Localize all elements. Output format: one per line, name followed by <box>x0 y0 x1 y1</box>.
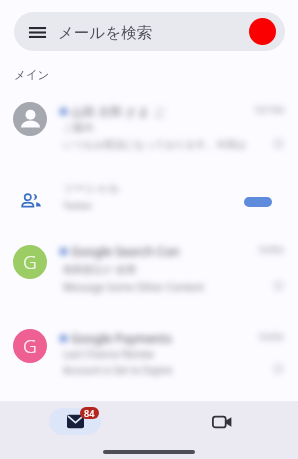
staticText: メイン <box>14 68 50 82</box>
staticText: メールを検索 <box>58 23 153 43</box>
staticText: ソーシャル <box>63 181 120 195</box>
button[interactable] <box>0 180 298 222</box>
staticText: Google Payments <box>71 330 172 346</box>
staticText: ご案内 <box>63 121 94 134</box>
button[interactable]: Account <box>249 18 276 45</box>
staticText: 検索順位が 改善 <box>63 262 136 276</box>
staticText: Message Some Other Content <box>63 280 204 294</box>
staticText: 山田 太郎 さま ご <box>71 103 166 119</box>
staticText: G <box>23 333 37 359</box>
staticText: 84 <box>84 407 95 419</box>
staticText: Account is Set to Expire <box>63 363 173 377</box>
button[interactable] <box>14 12 285 51</box>
staticText: Twitter <box>63 199 93 211</box>
button[interactable]: Meet <box>196 408 248 435</box>
button[interactable]: Mail <box>49 408 101 435</box>
staticText: 5月4日 <box>259 331 285 342</box>
staticText: G <box>23 249 37 275</box>
button[interactable] <box>0 97 298 141</box>
button[interactable] <box>0 240 298 284</box>
staticText: 5月8日 <box>259 244 285 255</box>
staticText: いつもお世話になっております。今回は <box>63 138 247 151</box>
staticText: Last Chance Renew <box>63 347 154 361</box>
staticText: Google Search Con <box>71 243 180 259</box>
button[interactable] <box>0 324 298 368</box>
staticText: 5月14日 <box>255 104 285 115</box>
